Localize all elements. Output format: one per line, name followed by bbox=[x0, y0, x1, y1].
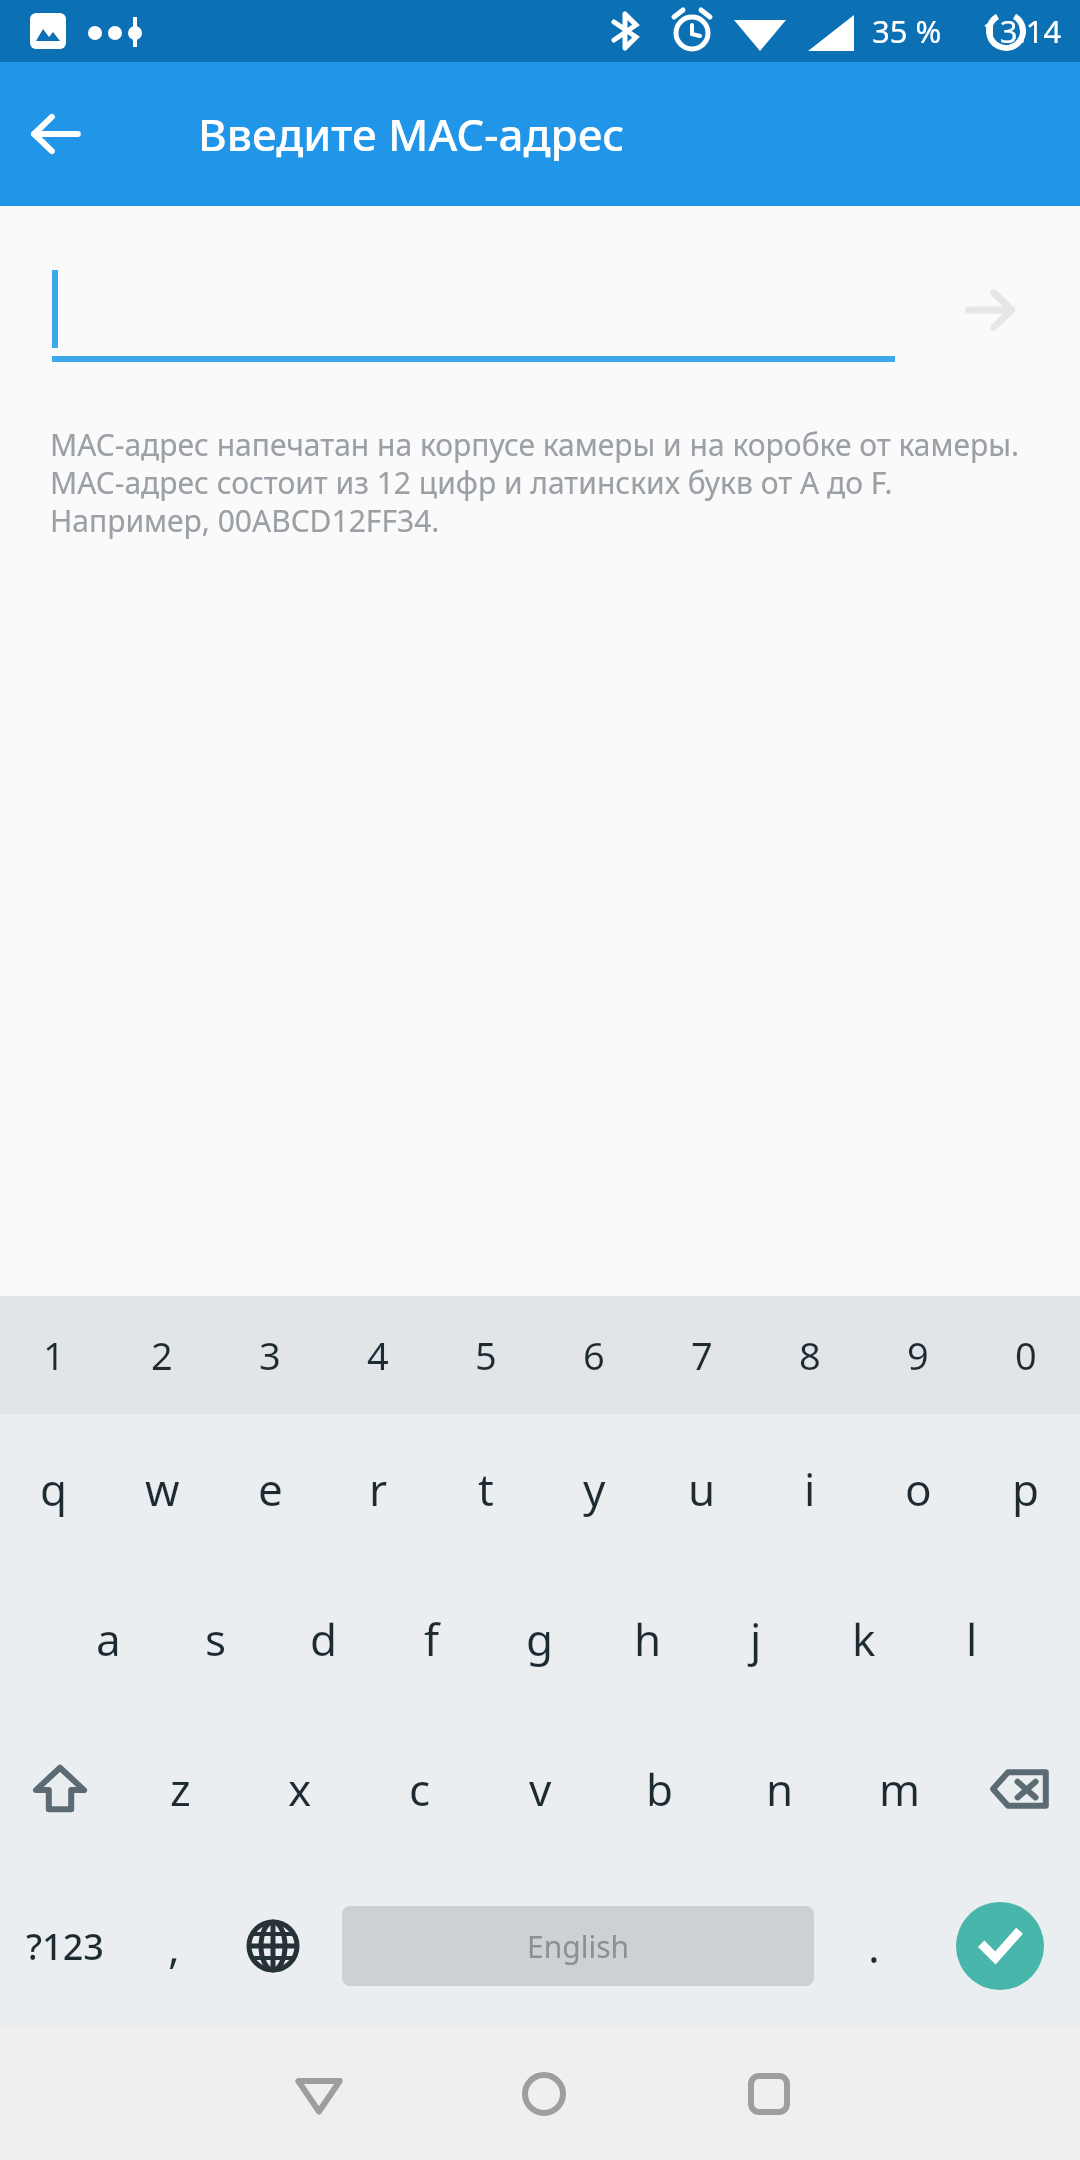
staticText: 0 bbox=[1015, 1329, 1037, 1381]
staticText: 8 bbox=[799, 1329, 821, 1381]
staticText: p bbox=[1012, 1459, 1040, 1519]
button[interactable]: d bbox=[270, 1564, 378, 1714]
button[interactable]: u bbox=[648, 1414, 756, 1564]
button[interactable]: g bbox=[486, 1564, 594, 1714]
button[interactable]: Backspace bbox=[960, 1714, 1080, 1864]
staticText: g bbox=[526, 1609, 554, 1669]
staticText: z bbox=[170, 1759, 191, 1819]
button[interactable]: 6 bbox=[540, 1296, 648, 1414]
staticText: 35 % bbox=[872, 10, 942, 52]
staticText: . bbox=[868, 1916, 880, 1976]
button[interactable]: x bbox=[240, 1714, 360, 1864]
staticText: x bbox=[288, 1759, 312, 1819]
staticText: 7 bbox=[691, 1329, 713, 1381]
staticText: 9 bbox=[907, 1329, 929, 1381]
button[interactable]: 3 bbox=[216, 1296, 324, 1414]
button[interactable]: q bbox=[0, 1414, 108, 1564]
staticText: t bbox=[478, 1459, 494, 1519]
button[interactable]: 5 bbox=[432, 1296, 540, 1414]
button[interactable]: , bbox=[130, 1864, 218, 2028]
staticText: , bbox=[168, 1916, 180, 1976]
staticText: l bbox=[966, 1609, 978, 1669]
button[interactable]: s bbox=[162, 1564, 270, 1714]
staticText: u bbox=[688, 1459, 716, 1519]
button[interactable]: 9 bbox=[864, 1296, 972, 1414]
button[interactable]: Recents bbox=[694, 2028, 844, 2160]
staticText: r bbox=[369, 1459, 388, 1519]
staticText: o bbox=[905, 1459, 932, 1519]
staticText: v bbox=[529, 1759, 552, 1819]
staticText: 13:14 bbox=[982, 10, 1062, 52]
button[interactable]: Done bbox=[920, 1864, 1080, 2028]
staticText: e bbox=[258, 1459, 283, 1519]
staticText: s bbox=[205, 1609, 227, 1669]
staticText: n bbox=[766, 1759, 794, 1819]
staticText: 5 bbox=[475, 1329, 497, 1381]
button[interactable]: English bbox=[342, 1906, 814, 1986]
button[interactable]: z bbox=[120, 1714, 240, 1864]
staticText: m bbox=[879, 1759, 921, 1819]
button[interactable]: j bbox=[702, 1564, 810, 1714]
button[interactable]: n bbox=[720, 1714, 840, 1864]
button[interactable]: t bbox=[432, 1414, 540, 1564]
staticText: Введите MAC-адрес bbox=[198, 104, 625, 164]
button[interactable]: f bbox=[378, 1564, 486, 1714]
staticText: 6 bbox=[583, 1329, 605, 1381]
staticText: h bbox=[634, 1609, 662, 1669]
button[interactable]: 4 bbox=[324, 1296, 432, 1414]
button[interactable]: i bbox=[756, 1414, 864, 1564]
staticText: 3 bbox=[259, 1329, 281, 1381]
button[interactable]: 8 bbox=[756, 1296, 864, 1414]
staticText: w bbox=[145, 1459, 180, 1519]
staticText: ?123 bbox=[26, 1922, 104, 1971]
staticText: c bbox=[409, 1759, 431, 1819]
button[interactable]: v bbox=[480, 1714, 600, 1864]
button[interactable]: Shift bbox=[0, 1714, 120, 1864]
staticText: MAC-адрес напечатан на корпусе камеры и … bbox=[50, 424, 1035, 541]
staticText: k bbox=[852, 1609, 876, 1669]
button[interactable]: l bbox=[918, 1564, 1026, 1714]
staticText: 4 bbox=[367, 1329, 389, 1381]
button[interactable]: c bbox=[360, 1714, 480, 1864]
button[interactable]: y bbox=[540, 1414, 648, 1564]
button[interactable]: 7 bbox=[648, 1296, 756, 1414]
button[interactable]: a bbox=[54, 1564, 162, 1714]
button[interactable]: . bbox=[828, 1864, 920, 2028]
button[interactable]: m bbox=[840, 1714, 960, 1864]
button[interactable]: Change language bbox=[218, 1864, 328, 2028]
button[interactable]: b bbox=[600, 1714, 720, 1864]
button[interactable]: e bbox=[216, 1414, 324, 1564]
button[interactable]: h bbox=[594, 1564, 702, 1714]
button[interactable]: 2 bbox=[108, 1296, 216, 1414]
staticText: f bbox=[424, 1609, 440, 1669]
staticText: d bbox=[310, 1609, 338, 1669]
staticText: q bbox=[40, 1459, 68, 1519]
staticText: English bbox=[527, 1926, 630, 1967]
button[interactable]: k bbox=[810, 1564, 918, 1714]
staticText: a bbox=[96, 1609, 121, 1669]
button[interactable]: w bbox=[108, 1414, 216, 1564]
button[interactable]: r bbox=[324, 1414, 432, 1564]
button[interactable]: 1 bbox=[0, 1296, 108, 1414]
button[interactable]: Back bbox=[244, 2028, 394, 2160]
button[interactable]: 0 bbox=[972, 1296, 1080, 1414]
staticText: 2 bbox=[151, 1329, 173, 1381]
staticText: b bbox=[646, 1759, 674, 1819]
staticText: y bbox=[583, 1459, 606, 1519]
button[interactable]: p bbox=[972, 1414, 1080, 1564]
button[interactable]: ?123 bbox=[0, 1864, 130, 2028]
button[interactable]: Back bbox=[0, 78, 112, 190]
staticText: i bbox=[804, 1459, 816, 1519]
button[interactable]: Home bbox=[469, 2028, 619, 2160]
button[interactable]: o bbox=[864, 1414, 972, 1564]
button[interactable]: Next bbox=[940, 260, 1040, 360]
staticText: 1 bbox=[43, 1329, 65, 1381]
staticText: j bbox=[750, 1609, 762, 1669]
